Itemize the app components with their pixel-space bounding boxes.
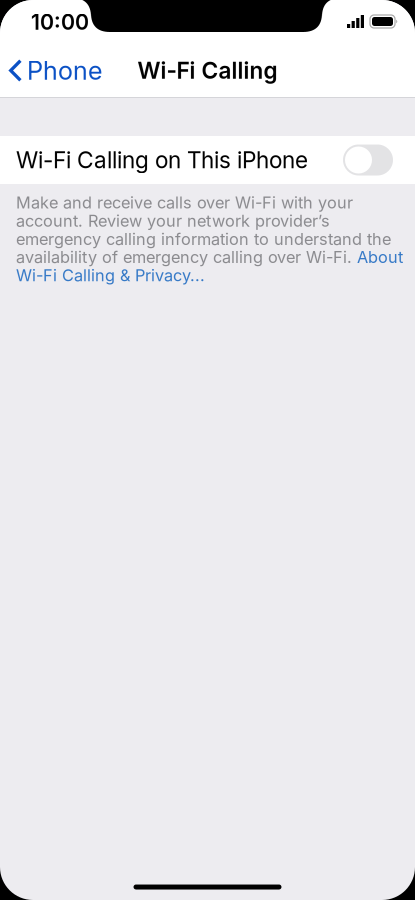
button[interactable]: Phone	[0, 44, 112, 97]
button[interactable]: Wi-Fi Calling on This iPhone	[0, 136, 415, 184]
staticText: Wi-Fi Calling	[137, 57, 277, 84]
staticText: 10:00	[31, 9, 89, 35]
staticText: Wi-Fi Calling on This iPhone	[16, 146, 308, 174]
staticText: Make and receive calls over Wi-Fi with y…	[16, 193, 403, 285]
staticText: Phone	[27, 55, 102, 86]
